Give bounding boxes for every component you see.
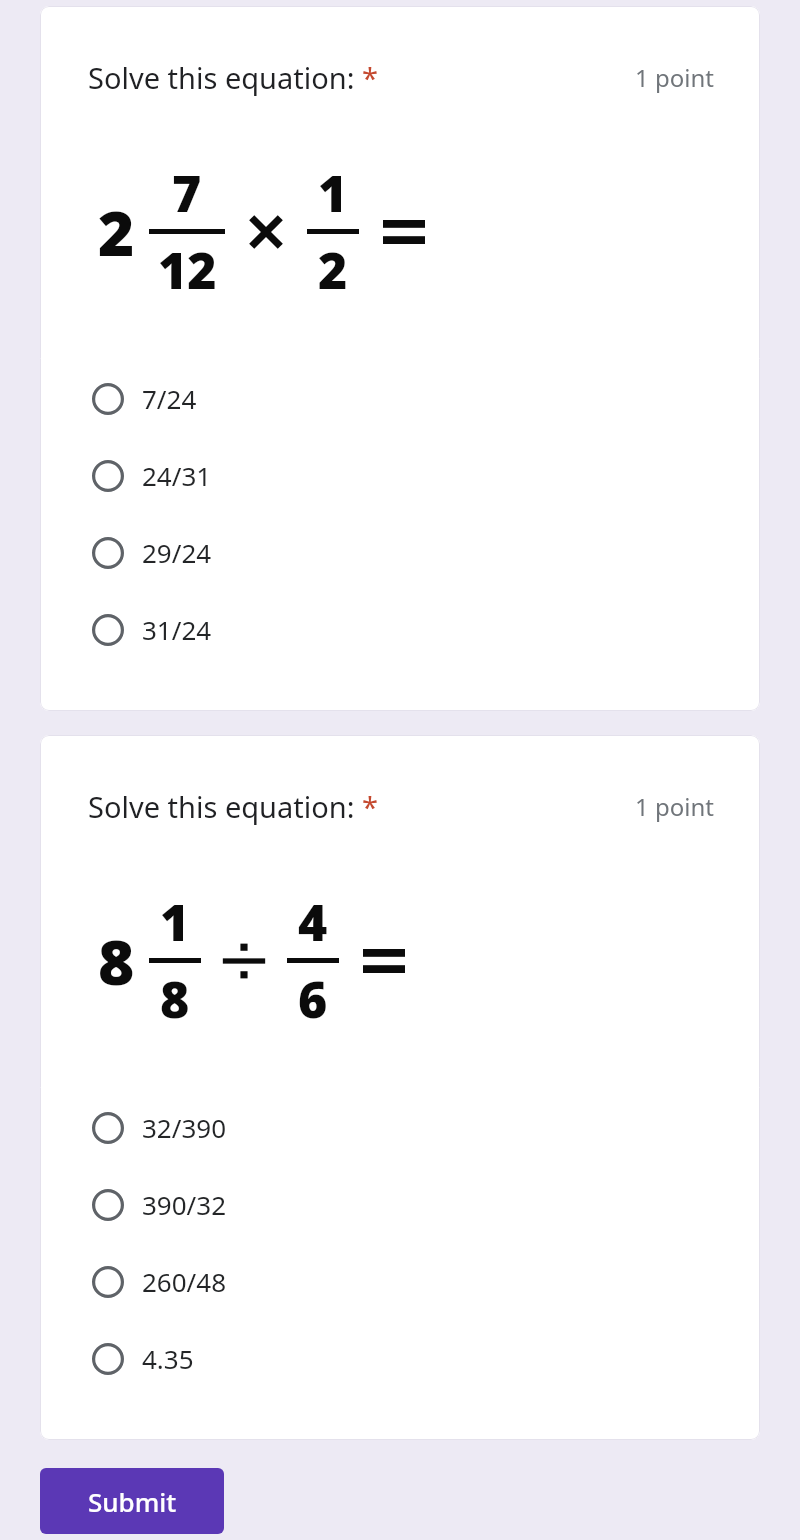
staticText: 1 point: [635, 61, 714, 94]
staticText: 390/32: [142, 1187, 227, 1222]
button[interactable]: 32/390: [40, 1089, 760, 1166]
staticText: Solve this equation:: [88, 787, 362, 826]
staticText: *: [362, 58, 378, 97]
button[interactable]: 24/31: [40, 437, 760, 514]
staticText: 31/24: [142, 612, 212, 647]
staticText: 260/48: [142, 1264, 227, 1299]
button[interactable]: 31/24: [40, 591, 760, 668]
button[interactable]: 260/48: [40, 1243, 760, 1320]
button[interactable]: 4.35: [40, 1320, 760, 1397]
staticText: 7: [172, 159, 202, 227]
button[interactable]: 7/24: [40, 360, 760, 437]
staticText: *: [362, 787, 378, 826]
button[interactable]: 29/24: [40, 514, 760, 591]
button[interactable]: Submit: [40, 1468, 224, 1534]
staticText: 6: [298, 965, 328, 1033]
staticText: 29/24: [142, 535, 212, 570]
staticText: 8: [98, 919, 135, 1003]
staticText: 7/24: [142, 381, 197, 416]
staticText: 12: [158, 236, 217, 304]
staticText: 1 point: [635, 790, 714, 823]
button[interactable]: 390/32: [40, 1166, 760, 1243]
staticText: Solve this equation:: [88, 58, 362, 97]
staticText: 1: [160, 888, 190, 956]
staticText: 8: [160, 965, 190, 1033]
staticText: 1: [318, 159, 348, 227]
staticText: 2: [98, 190, 135, 274]
staticText: 24/31: [142, 458, 212, 493]
staticText: Submit: [88, 1484, 177, 1519]
staticText: 4.35: [142, 1341, 194, 1376]
staticText: 32/390: [142, 1110, 227, 1145]
staticText: 4: [298, 888, 328, 956]
staticText: 2: [318, 236, 348, 304]
